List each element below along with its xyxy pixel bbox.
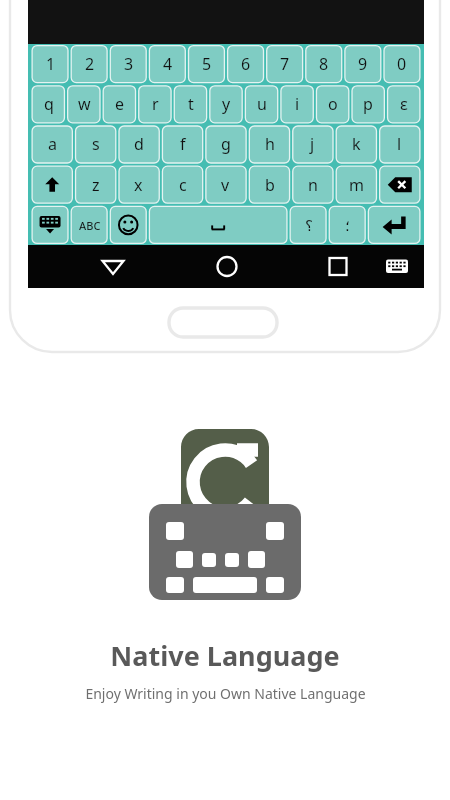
button[interactable]: Shift	[31, 165, 74, 205]
button[interactable]: 3	[109, 44, 148, 84]
staticText: u	[257, 93, 267, 115]
staticText: ABC	[79, 218, 101, 233]
button[interactable]: k	[335, 124, 378, 164]
button[interactable]: Space	[148, 205, 289, 245]
staticText: 6	[241, 53, 251, 75]
button[interactable]: t	[173, 84, 209, 124]
button[interactable]: b	[248, 165, 291, 205]
staticText: d	[134, 133, 144, 155]
staticText: 2	[85, 53, 95, 75]
button[interactable]: n	[291, 165, 334, 205]
staticText: o	[328, 93, 338, 115]
staticText: s	[92, 133, 100, 155]
button[interactable]: 0	[382, 44, 421, 84]
staticText: Native Language	[110, 637, 340, 674]
staticText: y	[222, 93, 231, 115]
staticText: e	[115, 93, 125, 115]
button[interactable]: d	[117, 124, 160, 164]
button[interactable]: 1	[31, 44, 70, 84]
staticText: 5	[202, 53, 212, 75]
staticText: 7	[280, 53, 290, 75]
staticText: h	[265, 133, 275, 155]
button[interactable]: x	[117, 165, 160, 205]
button[interactable]: ؟	[289, 205, 328, 245]
button[interactable]: ؛	[328, 205, 367, 245]
button[interactable]: e	[102, 84, 138, 124]
staticText: v	[221, 174, 230, 196]
button[interactable]: 9	[343, 44, 382, 84]
staticText: m	[349, 174, 364, 196]
staticText: n	[308, 174, 318, 196]
button[interactable]: m	[335, 165, 378, 205]
button[interactable]: u	[244, 84, 280, 124]
button[interactable]: 8	[304, 44, 343, 84]
staticText: ɛ	[400, 93, 408, 115]
button[interactable]: Recents	[318, 246, 358, 287]
staticText: b	[265, 174, 275, 196]
button[interactable]: 7	[265, 44, 304, 84]
staticText: 1	[46, 53, 56, 75]
staticText: f	[180, 133, 186, 155]
button[interactable]: w	[66, 84, 102, 124]
staticText: q	[44, 93, 54, 115]
staticText: ؟	[305, 217, 313, 234]
button[interactable]: p	[350, 84, 386, 124]
button[interactable]: s	[74, 124, 117, 164]
staticText: l	[397, 133, 402, 155]
staticText: p	[363, 93, 373, 115]
button[interactable]: Backspace	[378, 165, 421, 205]
button[interactable]: c	[161, 165, 204, 205]
button[interactable]: Emoji	[109, 205, 148, 245]
button[interactable]: i	[279, 84, 315, 124]
staticText: x	[134, 174, 143, 196]
button[interactable]: ɛ	[386, 84, 422, 124]
button[interactable]: Back	[93, 246, 133, 287]
button[interactable]: 6	[226, 44, 265, 84]
button[interactable]: ABC	[70, 205, 109, 245]
button[interactable]: l	[378, 124, 421, 164]
button[interactable]: o	[315, 84, 351, 124]
button[interactable]: Switch keyboard	[31, 205, 70, 245]
staticText: g	[221, 133, 231, 155]
staticText: w	[78, 93, 91, 115]
button[interactable]: f	[161, 124, 204, 164]
staticText: ؛	[345, 217, 350, 234]
button[interactable]: 4	[148, 44, 187, 84]
button[interactable]: Keyboard	[377, 246, 417, 287]
button[interactable]: q	[31, 84, 67, 124]
button[interactable]: z	[74, 165, 117, 205]
staticText: j	[310, 133, 315, 155]
staticText: z	[92, 174, 100, 196]
button[interactable]: v	[204, 165, 247, 205]
staticText: c	[179, 174, 187, 196]
staticText: 4	[163, 53, 173, 75]
button[interactable]: Enter	[367, 205, 422, 245]
staticText: k	[352, 133, 361, 155]
button[interactable]: Home	[207, 246, 247, 287]
staticText: a	[48, 133, 57, 155]
staticText: 0	[397, 53, 407, 75]
staticText: 9	[358, 53, 368, 75]
staticText: r	[152, 93, 159, 115]
staticText: i	[295, 93, 300, 115]
button[interactable]: 5	[187, 44, 226, 84]
button[interactable]: y	[208, 84, 244, 124]
staticText: 8	[319, 53, 329, 75]
button[interactable]: h	[248, 124, 291, 164]
staticText: 3	[124, 53, 134, 75]
button[interactable]: g	[204, 124, 247, 164]
staticText: Enjoy Writing in you Own Native Language	[85, 684, 366, 703]
button[interactable]: j	[291, 124, 334, 164]
button[interactable]: r	[137, 84, 173, 124]
button[interactable]: 2	[70, 44, 109, 84]
button[interactable]: a	[31, 124, 74, 164]
staticText: t	[188, 93, 194, 115]
